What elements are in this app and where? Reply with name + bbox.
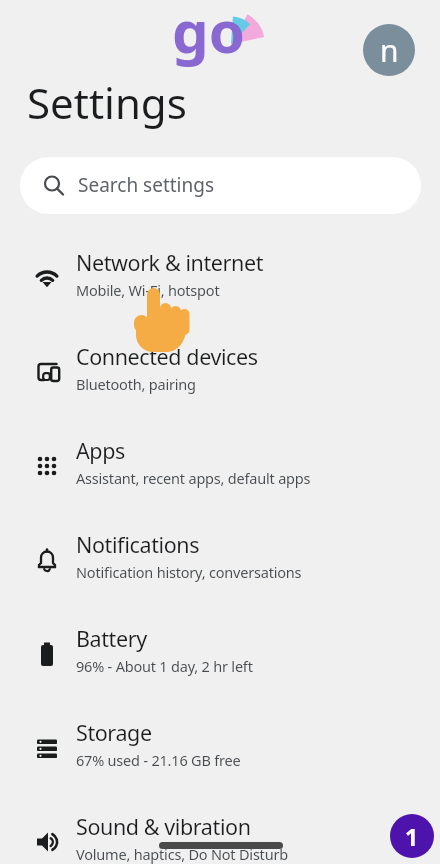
- staticText: 96% - About 1 day, 2 hr left: [76, 656, 253, 676]
- button[interactable]: Connected devices: [0, 326, 440, 420]
- staticText: Assistant, recent apps, default apps: [76, 468, 311, 488]
- staticText: Battery: [76, 624, 147, 653]
- staticText: 1: [405, 821, 419, 852]
- staticText: Volume, haptics, Do Not Disturb: [76, 844, 288, 864]
- staticText: Notification history, conversations: [76, 562, 302, 582]
- button[interactable]: n: [363, 24, 415, 76]
- staticText: Storage: [76, 718, 152, 747]
- button[interactable]: Search settings: [20, 157, 421, 214]
- button[interactable]: Battery: [0, 608, 440, 702]
- staticText: Settings: [27, 74, 187, 131]
- staticText: Mobile, Wi-Fi, hotspot: [76, 280, 220, 300]
- staticText: Sound & vibration: [76, 812, 251, 841]
- staticText: Notifications: [76, 530, 200, 559]
- staticText: Search settings: [78, 172, 215, 198]
- button[interactable]: 1: [390, 814, 434, 858]
- button[interactable]: Notifications: [0, 514, 440, 608]
- staticText: Apps: [76, 436, 125, 465]
- staticText: Connected devices: [76, 342, 258, 371]
- staticText: n: [380, 30, 399, 71]
- button[interactable]: Network & internet: [0, 232, 440, 326]
- button[interactable]: Apps: [0, 420, 440, 514]
- staticText: Network & internet: [76, 248, 263, 277]
- staticText: Bluetooth, pairing: [76, 374, 196, 394]
- staticText: go: [172, 0, 245, 70]
- button[interactable]: Sound & vibration: [0, 796, 440, 864]
- button[interactable]: Storage: [0, 702, 440, 796]
- staticText: 67% used - 21.16 GB free: [76, 750, 241, 770]
